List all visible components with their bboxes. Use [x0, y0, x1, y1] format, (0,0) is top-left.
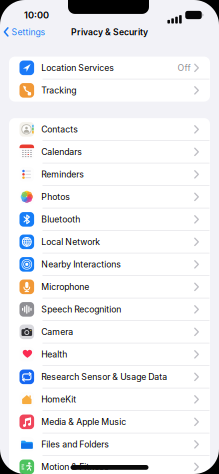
button[interactable]: Tracking — [9, 79, 210, 102]
button[interactable]: Local Network — [9, 231, 210, 253]
staticText: Nearby Interactions — [41, 259, 121, 270]
button[interactable]: Nearby Interactions — [9, 253, 210, 276]
button[interactable]: Photos — [9, 186, 210, 208]
staticText: Media & Apple Music — [41, 417, 126, 427]
staticText: Camera — [41, 327, 73, 337]
staticText: Location Services — [41, 63, 114, 73]
button[interactable]: HomeKit — [9, 388, 210, 411]
button[interactable]: Reminders — [9, 163, 210, 186]
button[interactable]: Motion & Fitness — [9, 456, 210, 474]
button[interactable]: Bluetooth — [9, 208, 210, 231]
staticText: Motion & Fitness — [41, 462, 109, 472]
staticText: HomeKit — [41, 394, 76, 405]
staticText: Tracking — [41, 85, 76, 96]
staticText: Photos — [41, 192, 70, 202]
staticText: Local Network — [41, 237, 100, 247]
staticText: Microphone — [41, 282, 89, 292]
button[interactable]: Research Sensor & Usage Data — [9, 366, 210, 388]
button[interactable]: Camera — [9, 321, 210, 343]
staticText: Privacy & Security — [71, 27, 148, 37]
staticText: Settings — [11, 27, 45, 37]
button[interactable]: Contacts — [9, 118, 210, 141]
staticText: Health — [41, 349, 67, 360]
staticText: Files and Folders — [41, 439, 109, 450]
button[interactable]: Microphone — [9, 276, 210, 298]
staticText: Speech Recognition — [41, 304, 121, 315]
button[interactable]: Files and Folders — [9, 433, 210, 456]
staticText: Off — [177, 63, 190, 73]
button[interactable]: Speech Recognition — [9, 298, 210, 321]
staticText: Research Sensor & Usage Data — [41, 372, 167, 382]
staticText: 10:00 — [24, 10, 49, 21]
staticText: Contacts — [41, 124, 78, 135]
staticText: Reminders — [41, 169, 84, 180]
staticText: Bluetooth — [41, 214, 80, 225]
button[interactable]: Media & Apple Music — [9, 411, 210, 433]
button[interactable]: Calendars — [9, 141, 210, 163]
button[interactable]: Location Services — [9, 57, 210, 79]
button[interactable]: Back — [4, 27, 45, 37]
button[interactable]: Health — [9, 343, 210, 366]
staticText: Calendars — [41, 147, 82, 157]
